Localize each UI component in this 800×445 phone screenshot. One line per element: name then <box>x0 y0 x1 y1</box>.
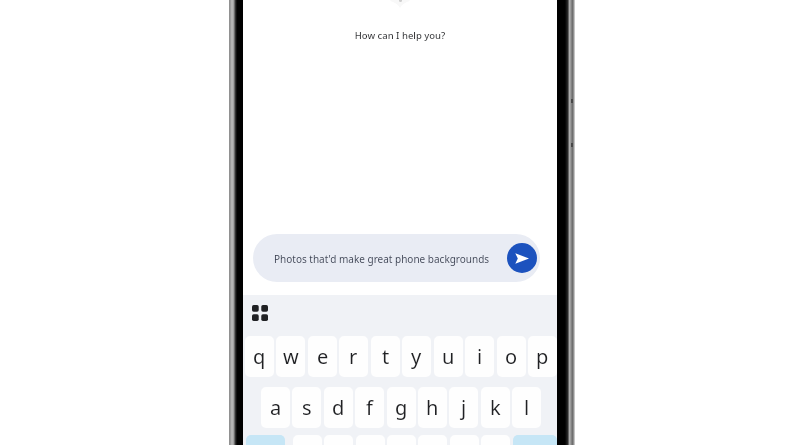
button[interactable]: t <box>371 336 400 377</box>
staticText: h <box>426 394 439 421</box>
staticText: u <box>442 343 455 370</box>
staticText: l <box>524 394 530 421</box>
staticText: q <box>253 343 266 370</box>
staticText: p <box>536 343 549 370</box>
button[interactable]: d <box>324 387 353 428</box>
button[interactable]: q <box>245 336 274 377</box>
button[interactable]: u <box>434 336 463 377</box>
button[interactable]: Shift <box>246 435 285 445</box>
staticText: t <box>382 343 390 370</box>
button[interactable]: o <box>497 336 526 377</box>
button[interactable]: a <box>261 387 290 428</box>
button[interactable]: p <box>528 336 557 377</box>
staticText: w <box>283 343 299 370</box>
button[interactable]: s <box>292 387 321 428</box>
button[interactable]: j <box>449 387 478 428</box>
staticText: y <box>411 343 422 370</box>
staticText: a <box>270 394 282 421</box>
button[interactable]: y <box>402 336 431 377</box>
button[interactable]: Keyboard options <box>252 305 268 321</box>
staticText: g <box>395 394 408 421</box>
staticText: Photos that'd make great phone backgroun… <box>274 252 490 266</box>
staticText: d <box>332 394 345 421</box>
button[interactable]: i <box>465 336 494 377</box>
staticText: o <box>505 343 518 370</box>
staticText: s <box>302 394 312 421</box>
button[interactable]: r <box>339 336 368 377</box>
staticText: e <box>317 343 329 370</box>
staticText: k <box>490 394 501 421</box>
button[interactable]: l <box>512 387 541 428</box>
button[interactable]: h <box>418 387 447 428</box>
staticText: How can I help you? <box>243 29 557 42</box>
button[interactable]: Send <box>507 243 537 273</box>
button[interactable]: w <box>276 336 305 377</box>
button[interactable]: e <box>308 336 337 377</box>
button[interactable]: Backspace <box>513 435 557 445</box>
staticText: i <box>477 343 483 370</box>
staticText: r <box>349 343 358 370</box>
staticText: f <box>366 394 373 421</box>
staticText: j <box>461 394 467 421</box>
button[interactable]: Photos that'd make great phone backgroun… <box>253 234 540 282</box>
button[interactable]: f <box>355 387 384 428</box>
button[interactable]: k <box>481 387 510 428</box>
button[interactable]: g <box>387 387 416 428</box>
